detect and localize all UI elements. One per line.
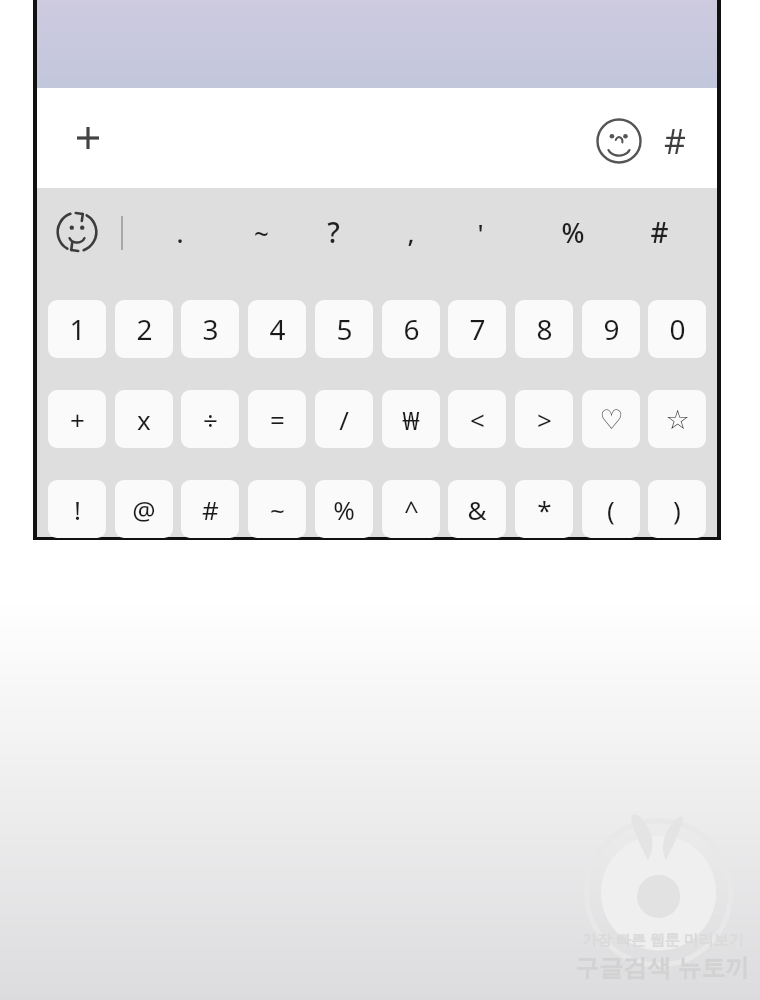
staticText: / (339, 402, 349, 437)
button[interactable]: ~ (248, 480, 306, 538)
button[interactable]: 0 (648, 300, 706, 358)
button[interactable]: Add attachment (62, 112, 114, 164)
button[interactable]: 1 (48, 300, 106, 358)
button[interactable]: ^ (382, 480, 440, 538)
staticText: 9 (603, 310, 620, 348)
staticText: * (537, 492, 552, 527)
staticText: # (202, 492, 219, 527)
staticText: x (137, 402, 151, 437)
staticText: ! (74, 492, 81, 527)
staticText: ☆ (665, 404, 690, 435)
button[interactable]: 6 (382, 300, 440, 358)
staticText: ₩ (402, 402, 420, 437)
staticText: # (664, 118, 686, 164)
staticText: 가장 빠른 웹툰 미리보기 (582, 929, 744, 949)
staticText: 1 (69, 310, 86, 348)
staticText: > (537, 402, 552, 437)
button[interactable]: ~ (235, 204, 287, 260)
staticText: & (467, 492, 487, 527)
button[interactable]: ☆ (648, 390, 706, 448)
button[interactable]: Emoji (590, 112, 648, 170)
button[interactable]: # (181, 480, 239, 538)
button[interactable]: ♡ (582, 390, 640, 448)
button[interactable]: 8 (515, 300, 573, 358)
button[interactable]: ) (648, 480, 706, 538)
staticText: 0 (669, 310, 686, 348)
button[interactable]: % (315, 480, 373, 538)
button[interactable]: ' (454, 204, 506, 260)
button[interactable]: 2 (115, 300, 173, 358)
staticText: 8 (536, 310, 553, 348)
staticText: ~ (254, 215, 269, 250)
staticText: ( (607, 492, 615, 527)
staticText: % (561, 214, 585, 251)
button[interactable]: ( (582, 480, 640, 538)
staticText: ♡ (599, 404, 624, 435)
button[interactable]: / (315, 390, 373, 448)
button[interactable]: . (154, 204, 206, 260)
button[interactable]: 9 (582, 300, 640, 358)
staticText: . (176, 215, 184, 250)
button[interactable]: # (633, 204, 685, 260)
button[interactable]: ! (48, 480, 106, 538)
button[interactable]: % (547, 204, 599, 260)
staticText: # (650, 213, 669, 251)
button[interactable]: 5 (315, 300, 373, 358)
staticText: + (70, 402, 85, 437)
button[interactable]: Emoji rotate (49, 204, 105, 260)
button[interactable]: > (515, 390, 573, 448)
staticText: % (333, 492, 355, 527)
staticText: ÷ (203, 402, 218, 437)
button[interactable]: = (248, 390, 306, 448)
button[interactable]: , (385, 204, 437, 260)
staticText: 4 (269, 310, 286, 348)
staticText: ~ (270, 492, 285, 527)
staticText: @ (132, 492, 156, 527)
staticText: 7 (469, 310, 486, 348)
button[interactable]: 3 (181, 300, 239, 358)
button[interactable]: 4 (248, 300, 306, 358)
button[interactable]: & (448, 480, 506, 538)
staticText: < (470, 402, 485, 437)
button[interactable]: Hashtag (647, 112, 703, 170)
button[interactable]: @ (115, 480, 173, 538)
staticText: 5 (336, 310, 353, 348)
staticText: ? (327, 213, 340, 251)
button[interactable]: ? (307, 204, 359, 260)
staticText: 구글검색 뉴토끼 (575, 950, 750, 980)
staticText: 2 (136, 310, 153, 348)
staticText: ^ (404, 492, 419, 527)
staticText: ' (477, 215, 484, 250)
staticText: = (270, 402, 285, 437)
button[interactable]: x (115, 390, 173, 448)
staticText: 3 (202, 310, 219, 348)
button[interactable]: 7 (448, 300, 506, 358)
button[interactable]: + (48, 390, 106, 448)
button[interactable]: ₩ (382, 390, 440, 448)
staticText: 6 (403, 310, 420, 348)
button[interactable]: ÷ (181, 390, 239, 448)
button[interactable]: < (448, 390, 506, 448)
staticText: ) (673, 492, 681, 527)
staticText: , (407, 215, 415, 250)
button[interactable]: * (515, 480, 573, 538)
